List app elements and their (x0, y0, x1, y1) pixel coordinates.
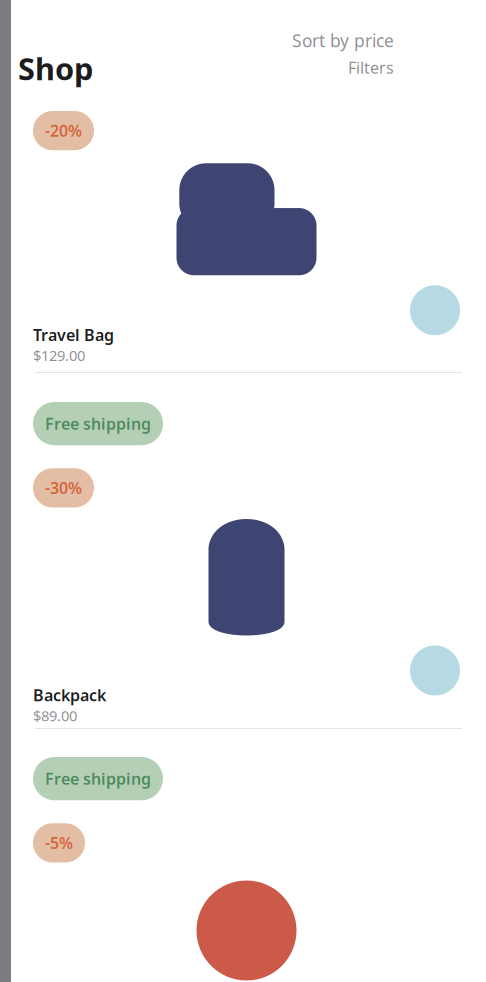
staticText: -5% (45, 832, 73, 853)
staticText: $129.00 (33, 345, 85, 365)
staticText: Free shipping (45, 413, 151, 434)
staticText: Travel Bag (33, 324, 114, 345)
staticText: Filters (348, 57, 394, 78)
button[interactable]: Add to cart (410, 285, 460, 335)
button[interactable]: Add to cart (410, 645, 460, 695)
staticText: Free shipping (45, 768, 151, 789)
button[interactable]: Sort by price (292, 29, 394, 52)
staticText: Backpack (33, 684, 106, 706)
staticText: Sort by price (292, 29, 394, 52)
staticText: $89.00 (33, 706, 77, 725)
button[interactable]: Filters (348, 57, 394, 78)
staticText: -30% (45, 477, 82, 498)
staticText: Shop (18, 48, 93, 89)
staticText: -20% (45, 120, 82, 141)
